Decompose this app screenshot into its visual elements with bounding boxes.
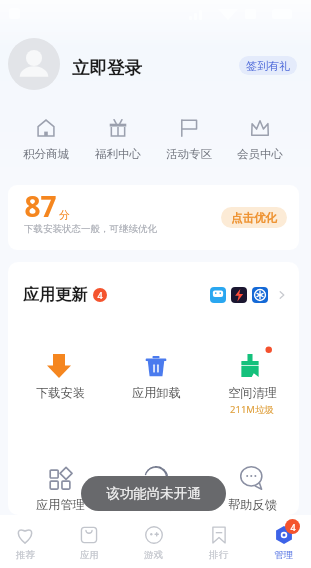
button[interactable]: 点击优化 <box>221 207 287 228</box>
button[interactable]: 应用管理 <box>13 466 108 512</box>
button[interactable]: 应用卸载 <box>108 354 204 400</box>
staticText: 分 <box>59 208 70 222</box>
staticText: 推荐 <box>16 549 35 561</box>
staticText: 下载安装 <box>36 385 85 400</box>
staticText: 帮助反馈 <box>228 497 277 512</box>
button[interactable]: 会员中心 <box>224 119 295 161</box>
staticText: 应用 <box>80 549 99 561</box>
staticText: 立即登录 <box>72 57 142 79</box>
button[interactable]: 应用 <box>57 518 121 568</box>
staticText: 点击优化 <box>231 211 277 225</box>
staticText: 管理 <box>274 549 293 561</box>
staticText: 应用管理 <box>36 497 85 512</box>
staticText: 211M垃圾 <box>230 403 274 416</box>
staticText: 签到有礼 <box>246 59 290 73</box>
staticText: 游戏 <box>144 549 163 561</box>
button[interactable]: 应用更新 <box>8 284 299 306</box>
staticText: 福利中心 <box>95 147 141 161</box>
button[interactable]: 游戏 <box>121 518 186 568</box>
button[interactable]: 应用同步 <box>108 466 204 512</box>
staticText: 积分商城 <box>23 147 69 161</box>
button[interactable]: 下载安装 <box>13 354 108 400</box>
staticText: 会员中心 <box>237 147 283 161</box>
staticText: 应用更新 <box>23 285 87 305</box>
button[interactable]: 积分商城 <box>10 119 82 161</box>
button[interactable]: 帮助反馈 <box>204 466 299 512</box>
button[interactable]: 签到有礼 <box>239 56 297 75</box>
staticText: 应用卸载 <box>132 385 181 400</box>
button[interactable]: 排行 <box>186 518 251 568</box>
staticText: 4 <box>290 521 296 533</box>
button[interactable]: 立即登录 <box>70 55 144 81</box>
staticText: 排行 <box>209 549 228 561</box>
staticText: 空间清理 <box>228 385 277 400</box>
button[interactable]: 4 <box>251 518 311 568</box>
button[interactable]: 空间清理 <box>204 354 299 416</box>
staticText: 应用同步 <box>132 497 181 512</box>
staticText: 4 <box>97 289 103 301</box>
staticText: 活动专区 <box>166 147 212 161</box>
button[interactable]: Avatar <box>8 38 60 90</box>
staticText: 87 <box>24 187 57 225</box>
button[interactable]: 福利中心 <box>82 119 153 161</box>
button[interactable]: 87 <box>8 185 299 250</box>
staticText: 下载安装状态一般，可继续优化 <box>24 223 157 235</box>
staticText: 该功能尚未开通 <box>106 485 201 502</box>
button[interactable]: 活动专区 <box>153 119 224 161</box>
button[interactable]: 推荐 <box>0 518 57 568</box>
